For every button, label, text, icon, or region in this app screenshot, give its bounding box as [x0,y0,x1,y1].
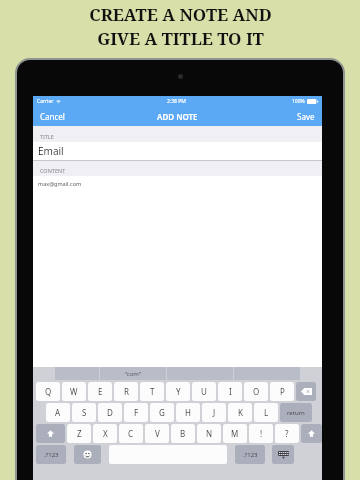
button[interactable]: H [176,403,200,422]
button[interactable]: W [62,382,86,401]
button[interactable]: G [150,403,174,422]
staticText: V [155,428,160,439]
button[interactable]: Cancel [35,108,70,125]
staticText: GIVE A TITLE TO IT [97,27,264,50]
button[interactable]: Hide keyboard [272,445,294,464]
staticText: TITLE [40,133,54,140]
button[interactable]: Q [36,382,60,401]
button[interactable]: Email [33,142,322,160]
button[interactable]: Z [67,424,91,443]
staticText: Y [176,386,181,397]
button[interactable]: V [145,424,169,443]
staticText: E [98,386,103,397]
staticText: CONTENT [40,167,66,174]
staticText: Carrier [37,98,54,105]
staticText: Z [77,428,82,439]
button[interactable]: D [98,403,122,422]
staticText: C [128,428,134,439]
staticText: W [70,386,78,397]
button[interactable]: L [254,403,278,422]
button[interactable]: .?123 [36,445,66,464]
button[interactable]: P [270,382,294,401]
button[interactable]: A [46,403,70,422]
staticText: ? [285,428,289,439]
button[interactable]: Emoji [74,445,101,464]
staticText: CREATE A NOTE AND [89,3,272,26]
staticText: return [287,409,305,417]
staticText: J [213,407,216,418]
button[interactable]: N [197,424,221,443]
button[interactable]: .?123 [235,445,265,464]
button[interactable]: S [72,403,96,422]
button[interactable]: C [119,424,143,443]
staticText: max@gmail.com [38,180,82,187]
staticText: F [134,407,139,418]
button[interactable]: U [192,382,216,401]
staticText: N [206,428,213,439]
staticText: “com” [125,370,142,378]
staticText: L [264,407,269,418]
button[interactable]: E [88,382,112,401]
button[interactable]: J [202,403,226,422]
staticText: S [82,407,87,418]
staticText: H [185,407,191,418]
staticText: O [253,386,260,397]
staticText: ADD NOTE [157,111,198,122]
button[interactable]: return [280,403,312,422]
button[interactable]: O [244,382,268,401]
button[interactable]: Shift [301,424,322,443]
staticText: Cancel [40,111,65,122]
button[interactable]: ? [275,424,299,443]
staticText: ! [260,428,263,439]
staticText: A [55,407,61,418]
staticText: Save [297,111,315,122]
staticText: Q [45,386,52,397]
staticText: U [201,386,207,397]
staticText: R [124,386,129,397]
staticText: M [231,428,239,439]
button[interactable]: R [114,382,138,401]
button[interactable]: Shift [36,424,65,443]
staticText: D [107,407,113,418]
button[interactable]: M [223,424,247,443]
button[interactable]: F [124,403,148,422]
staticText: T [150,386,155,397]
staticText: .?123 [243,451,258,459]
staticText: X [103,428,108,439]
button[interactable]: B [171,424,195,443]
button[interactable]: I [218,382,242,401]
staticText: P [280,386,285,397]
staticText: .?123 [44,451,59,459]
staticText: K [238,407,243,418]
button[interactable]: “com” [100,367,166,380]
staticText: B [180,428,186,439]
button[interactable]: Save [292,108,320,125]
button[interactable]: Y [166,382,190,401]
button[interactable]: Backspace [296,382,316,401]
staticText: Email [38,144,64,158]
button[interactable]: X [93,424,117,443]
staticText: G [159,407,165,418]
button[interactable]: K [228,403,252,422]
button[interactable]: max@gmail.com [33,176,322,367]
button[interactable]: T [140,382,164,401]
staticText: 100% [292,98,305,105]
button[interactable]: ! [249,424,273,443]
staticText: I [229,386,232,397]
staticText: 2:38 PM [167,98,186,105]
